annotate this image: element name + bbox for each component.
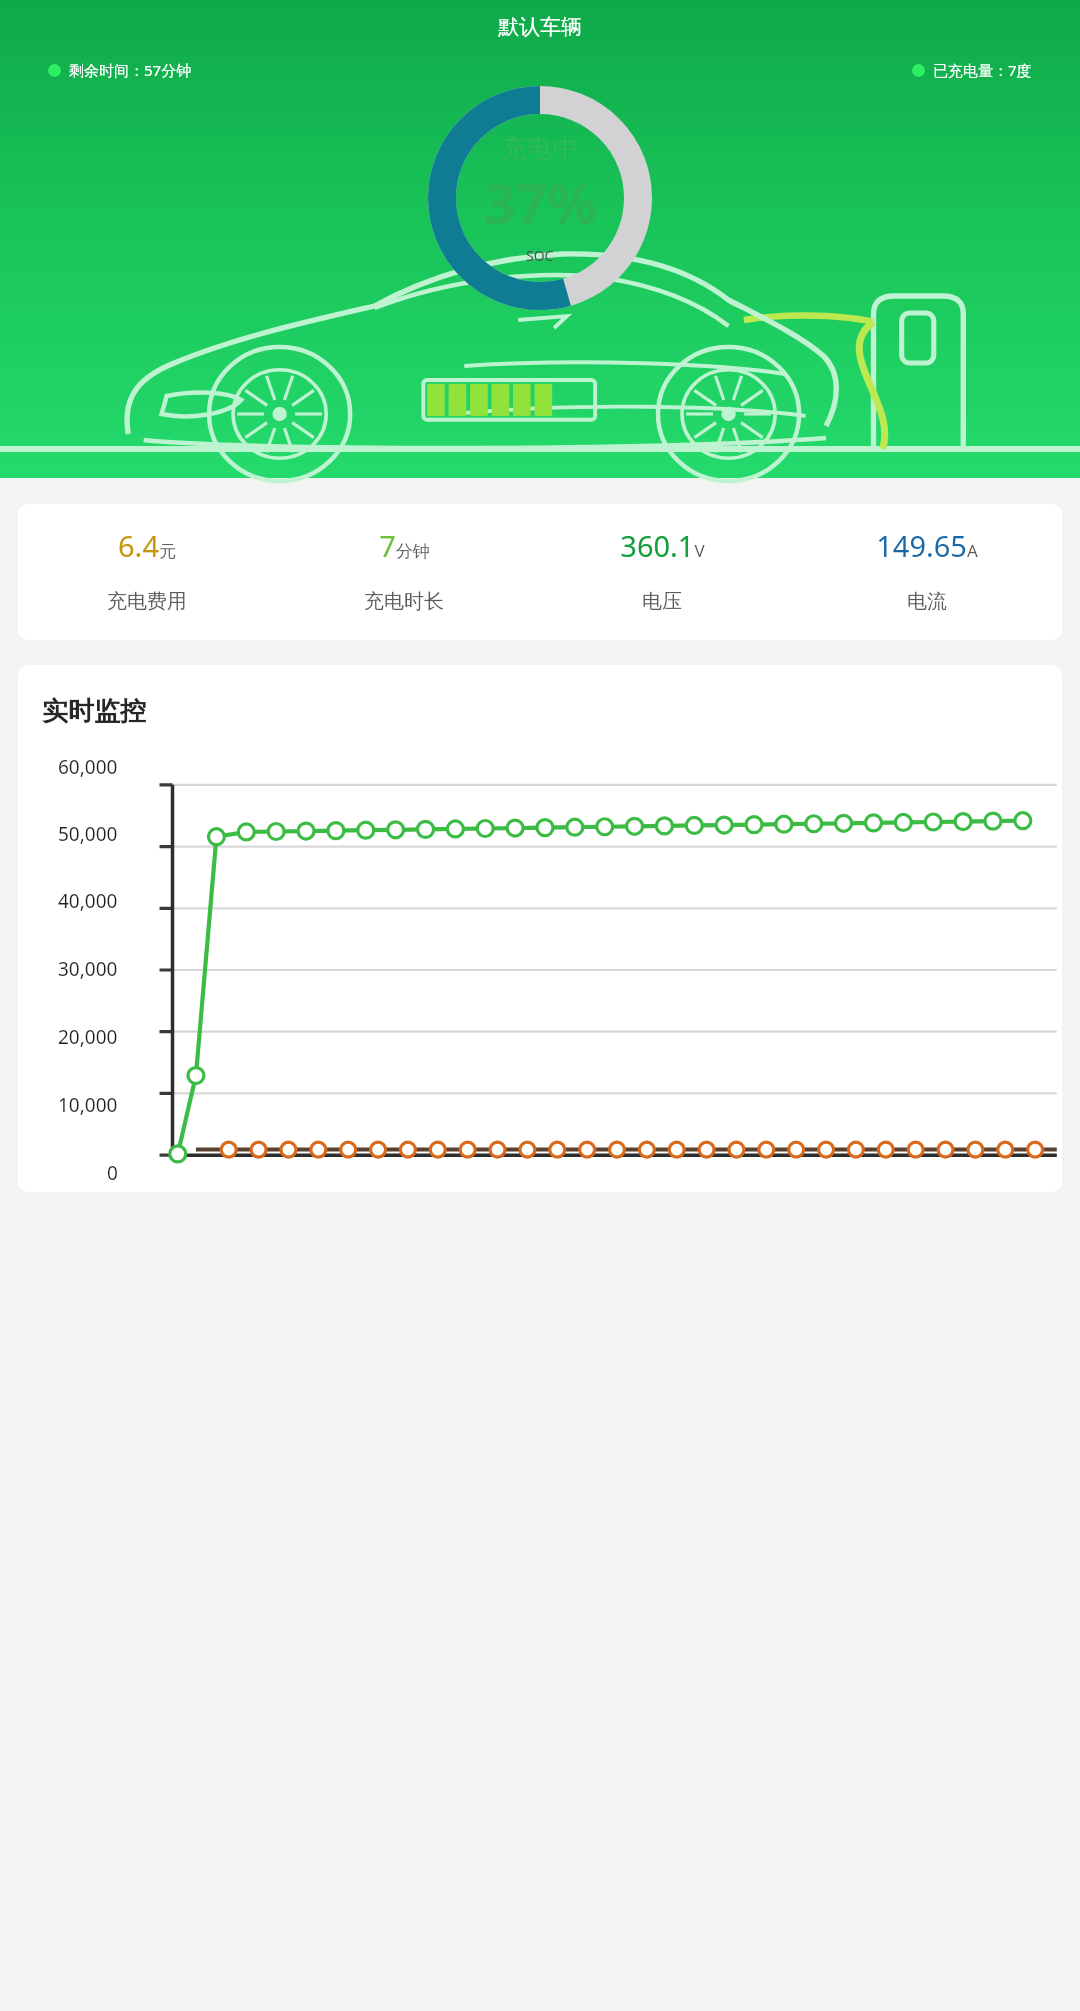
- button[interactable]: 已充电量：7度: [912, 60, 1032, 80]
- staticText: 已充电量：7度: [933, 60, 1032, 80]
- staticText: 实时监控: [42, 695, 146, 728]
- staticText: 默认车辆: [0, 14, 1080, 40]
- staticText: 充电中: [501, 132, 579, 165]
- button[interactable]: 实时监控: [18, 665, 1062, 1192]
- button[interactable]: 剩余时间：57分钟: [48, 60, 192, 80]
- staticText: 149.65A: [876, 526, 978, 565]
- staticText: 37%: [484, 165, 597, 240]
- staticText: 6.4元: [118, 526, 176, 565]
- staticText: 充电费用: [107, 589, 187, 614]
- staticText: 电流: [907, 589, 947, 614]
- staticText: 充电时长: [364, 589, 444, 614]
- staticText: SOC: [526, 246, 554, 265]
- staticText: 7分钟: [379, 526, 430, 565]
- staticText: 剩余时间：57分钟: [69, 60, 192, 80]
- staticText: 360.1V: [620, 526, 705, 565]
- staticText: 60,000: [58, 754, 118, 780]
- staticText: 20,000: [58, 1024, 118, 1050]
- staticText: 0: [107, 1160, 118, 1186]
- staticText: 10,000: [58, 1092, 118, 1118]
- staticText: 40,000: [58, 888, 118, 914]
- staticText: 电压: [642, 589, 682, 614]
- staticText: 30,000: [58, 956, 118, 982]
- button[interactable]: 6.4元: [18, 504, 1062, 640]
- staticText: 50,000: [58, 821, 118, 847]
